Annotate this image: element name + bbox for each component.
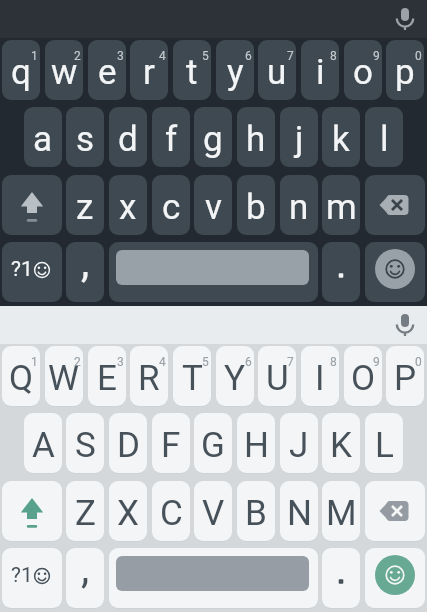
- button[interactable]: [322, 548, 360, 608]
- staticText: p: [395, 52, 415, 93]
- staticText: ,: [81, 242, 90, 287]
- staticText: V: [202, 493, 225, 534]
- staticText: M: [326, 493, 357, 534]
- button[interactable]: R: [130, 346, 168, 406]
- button[interactable]: p: [386, 40, 424, 100]
- staticText: 9: [373, 49, 380, 63]
- button[interactable]: [2, 175, 62, 235]
- button[interactable]: u: [258, 40, 296, 100]
- button[interactable]: H: [237, 413, 275, 473]
- button[interactable]: S: [66, 413, 104, 473]
- button[interactable]: L: [365, 413, 403, 473]
- button[interactable]: [322, 242, 360, 302]
- button[interactable]: P: [386, 346, 424, 406]
- button[interactable]: W: [45, 346, 83, 406]
- button[interactable]: x: [109, 175, 147, 235]
- button[interactable]: U: [258, 346, 296, 406]
- button[interactable]: [109, 548, 318, 608]
- button[interactable]: N: [280, 481, 318, 541]
- button[interactable]: X: [109, 481, 147, 541]
- button[interactable]: [365, 175, 425, 235]
- button[interactable]: ?1: [2, 242, 62, 302]
- staticText: t: [186, 52, 198, 93]
- staticText: x: [119, 187, 137, 228]
- staticText: E: [97, 358, 117, 399]
- button[interactable]: F: [152, 413, 190, 473]
- button[interactable]: q: [2, 40, 40, 100]
- button[interactable]: V: [194, 481, 232, 541]
- button[interactable]: ,: [66, 548, 104, 608]
- button[interactable]: ?1: [2, 548, 62, 608]
- button[interactable]: [386, 0, 424, 38]
- button[interactable]: a: [24, 107, 62, 167]
- button[interactable]: w: [45, 40, 83, 100]
- button[interactable]: l: [365, 107, 403, 167]
- button[interactable]: e: [88, 40, 126, 100]
- button[interactable]: k: [322, 107, 360, 167]
- button[interactable]: t: [173, 40, 211, 100]
- button[interactable]: ,: [66, 242, 104, 302]
- button[interactable]: D: [109, 413, 147, 473]
- button[interactable]: j: [280, 107, 318, 167]
- button[interactable]: [365, 548, 425, 608]
- button[interactable]: A: [24, 413, 62, 473]
- staticText: S: [75, 425, 96, 466]
- button[interactable]: z: [66, 175, 104, 235]
- button[interactable]: E: [88, 346, 126, 406]
- staticText: c: [162, 187, 181, 228]
- staticText: B: [245, 493, 267, 534]
- button[interactable]: b: [237, 175, 275, 235]
- button[interactable]: s: [66, 107, 104, 167]
- staticText: 5: [202, 49, 209, 63]
- button[interactable]: M: [322, 481, 360, 541]
- button[interactable]: B: [237, 481, 275, 541]
- button[interactable]: J: [280, 413, 318, 473]
- button[interactable]: r: [130, 40, 168, 100]
- button[interactable]: [386, 306, 424, 344]
- staticText: A: [32, 425, 55, 466]
- button[interactable]: C: [152, 481, 190, 541]
- staticText: r: [143, 52, 155, 93]
- staticText: 7: [287, 49, 294, 63]
- button[interactable]: Z: [66, 481, 104, 541]
- button[interactable]: [365, 481, 425, 541]
- staticText: L: [375, 425, 394, 466]
- staticText: 2: [74, 49, 81, 63]
- staticText: 2: [74, 355, 81, 369]
- staticText: 8: [330, 355, 337, 369]
- button[interactable]: K: [322, 413, 360, 473]
- staticText: ?1: [11, 257, 33, 282]
- button[interactable]: m: [322, 175, 360, 235]
- staticText: ?1: [11, 563, 33, 588]
- staticText: 4: [159, 49, 166, 63]
- staticText: Z: [75, 493, 96, 534]
- staticText: e: [98, 52, 117, 93]
- button[interactable]: O: [344, 346, 382, 406]
- button[interactable]: h: [237, 107, 275, 167]
- button[interactable]: d: [109, 107, 147, 167]
- staticText: 6: [245, 49, 252, 63]
- button[interactable]: g: [194, 107, 232, 167]
- staticText: v: [205, 187, 222, 228]
- button[interactable]: o: [344, 40, 382, 100]
- button[interactable]: c: [152, 175, 190, 235]
- button[interactable]: Y: [216, 346, 254, 406]
- button[interactable]: G: [194, 413, 232, 473]
- button[interactable]: f: [152, 107, 190, 167]
- staticText: T: [182, 358, 203, 399]
- staticText: i: [316, 52, 325, 93]
- button[interactable]: i: [301, 40, 339, 100]
- button[interactable]: y: [216, 40, 254, 100]
- button[interactable]: T: [173, 346, 211, 406]
- button[interactable]: [365, 242, 425, 302]
- staticText: m: [326, 187, 357, 228]
- button[interactable]: [2, 481, 62, 541]
- button[interactable]: Q: [2, 346, 40, 406]
- button[interactable]: [109, 242, 318, 302]
- staticText: 5: [202, 355, 209, 369]
- staticText: 4: [159, 355, 166, 369]
- button[interactable]: I: [301, 346, 339, 406]
- button[interactable]: n: [280, 175, 318, 235]
- staticText: H: [244, 425, 269, 466]
- button[interactable]: v: [194, 175, 232, 235]
